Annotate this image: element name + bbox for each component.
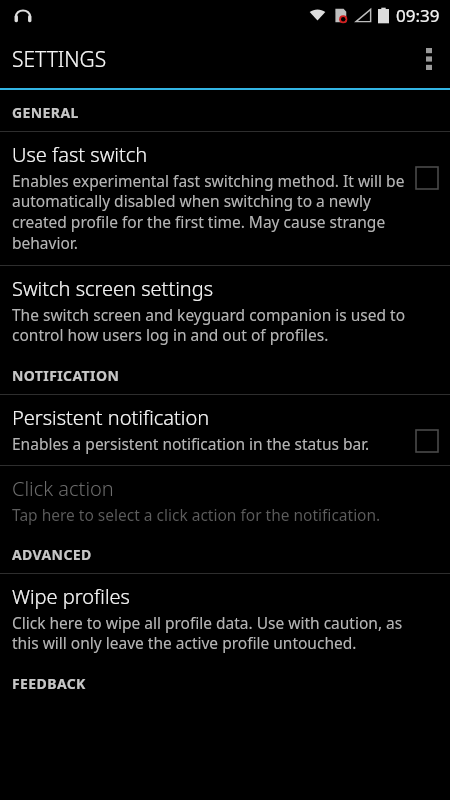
- button[interactable]: Use fast switch: [0, 132, 450, 265]
- staticText: Click action: [12, 475, 114, 502]
- staticText: NOTIFICATION: [12, 366, 120, 385]
- button[interactable]: Wipe profiles: [0, 574, 450, 664]
- staticText: Enables experimental fast switching meth…: [12, 170, 406, 254]
- button[interactable]: Use fast switch checkbox: [414, 165, 440, 191]
- staticText: ADVANCED: [12, 545, 92, 564]
- staticText: Click here to wipe all profile data. Use…: [12, 612, 406, 654]
- staticText: The switch screen and keyguard companion…: [12, 304, 406, 346]
- staticText: Tap here to select a click action for th…: [12, 504, 381, 525]
- button[interactable]: Switch screen settings: [0, 266, 450, 356]
- staticText: Wipe profiles: [12, 583, 130, 610]
- staticText: GENERAL: [12, 103, 79, 122]
- staticText: 09:39: [396, 4, 440, 27]
- staticText: SETTINGS: [12, 45, 107, 74]
- staticText: Enables a persistent notification in the…: [12, 433, 370, 454]
- staticText: Persistent notification: [12, 404, 210, 431]
- button[interactable]: Persistent notification: [0, 395, 450, 465]
- button[interactable]: More options: [408, 30, 450, 88]
- button[interactable]: Persistent notification checkbox: [414, 428, 440, 454]
- staticText: FEEDBACK: [12, 674, 86, 693]
- staticText: Switch screen settings: [12, 275, 214, 302]
- button[interactable]: Click action: [0, 466, 450, 535]
- staticText: Use fast switch: [12, 141, 148, 168]
